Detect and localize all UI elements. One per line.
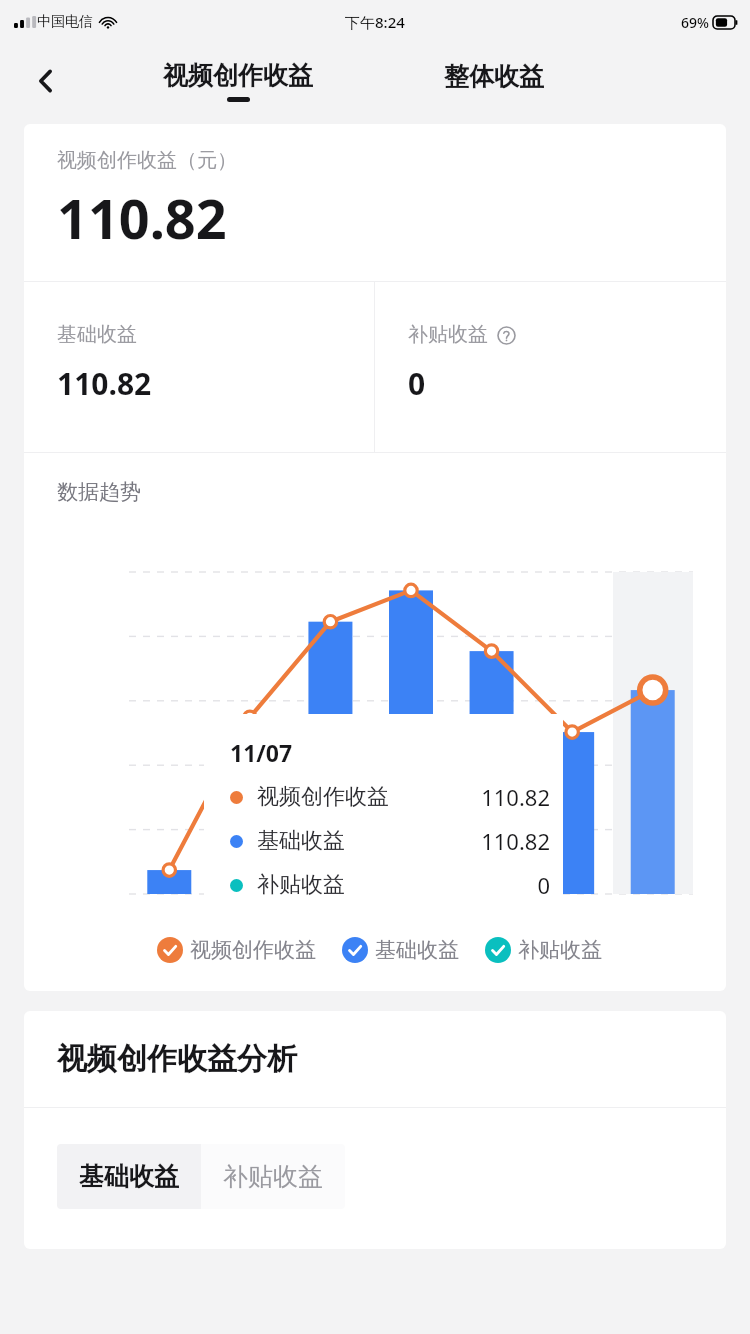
staticText: 整体收益 xyxy=(444,61,544,92)
staticText: 0 xyxy=(408,363,426,404)
staticText: 110.82 xyxy=(481,782,550,812)
staticText: 110.82 xyxy=(57,363,152,404)
staticText: 110.82 xyxy=(481,826,550,856)
staticText: 视频创作收益 xyxy=(163,60,313,91)
staticText: 补贴收益 xyxy=(518,937,602,963)
button[interactable]: 补贴收益 xyxy=(485,937,602,963)
button[interactable]: 视频创作收益 xyxy=(163,60,313,102)
staticText: 补贴收益 xyxy=(408,322,488,347)
staticText: 基础收益 xyxy=(57,322,137,347)
staticText: 110.82 xyxy=(57,181,227,255)
staticText: 视频创作收益分析 xyxy=(57,1040,297,1078)
button[interactable]: 整体收益 xyxy=(444,61,544,92)
staticText: 补贴收益 xyxy=(223,1161,323,1192)
staticText: 视频创作收益 xyxy=(257,783,389,811)
button[interactable]: 视频创作收益 xyxy=(157,937,316,963)
button[interactable]: 基础收益 xyxy=(57,1144,201,1209)
button[interactable]: 补贴收益 xyxy=(201,1144,345,1209)
staticText: 11/07 xyxy=(230,737,293,768)
staticText: 基础收益 xyxy=(257,827,345,855)
button[interactable]: 基础收益 xyxy=(342,937,459,963)
staticText: 中国电信 xyxy=(37,13,93,31)
button[interactable]: Back xyxy=(20,55,72,107)
staticText: 基础收益 xyxy=(375,937,459,963)
staticText: 69% xyxy=(681,13,709,32)
staticText: 基础收益 xyxy=(79,1161,179,1192)
staticText: 下午8:24 xyxy=(345,12,405,32)
staticText: 数据趋势 xyxy=(57,479,141,505)
staticText: 补贴收益 xyxy=(257,871,345,899)
button[interactable]: 补贴收益说明 xyxy=(496,325,516,345)
staticText: 视频创作收益 xyxy=(190,937,316,963)
staticText: 0 xyxy=(537,870,550,900)
staticText: 视频创作收益（元） xyxy=(57,148,237,173)
